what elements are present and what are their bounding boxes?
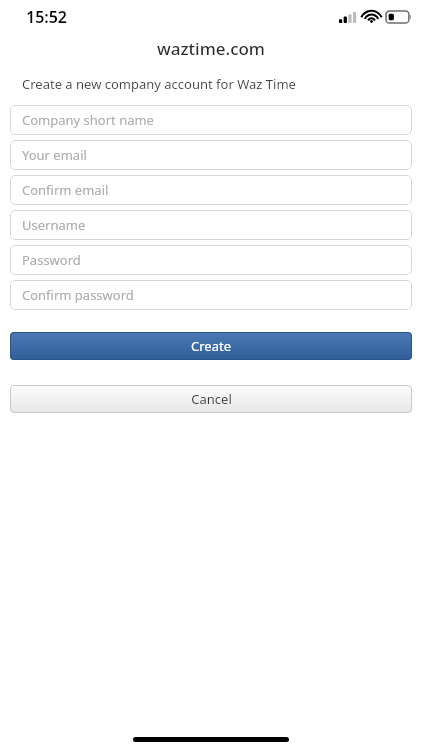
staticText: Create [191, 337, 231, 355]
staticText: Confirm password [22, 286, 134, 304]
staticText: Confirm email [22, 181, 109, 199]
staticText: 15:52 [26, 6, 68, 28]
staticText: Cancel [191, 390, 232, 408]
other: Battery [386, 11, 412, 23]
staticText: Create a new company account for Waz Tim… [22, 75, 296, 93]
staticText: Company short name [22, 111, 154, 129]
staticText: Username [22, 216, 86, 234]
other: Cellular signal [339, 12, 357, 23]
button[interactable]: Create [10, 332, 412, 360]
button[interactable]: Your email [10, 140, 412, 170]
staticText: Password [22, 251, 81, 269]
other: Wi-Fi [363, 11, 380, 23]
button[interactable]: Password [10, 245, 412, 275]
staticText: waztime.com [157, 37, 265, 60]
staticText: Your email [22, 146, 87, 164]
button[interactable]: Cancel [10, 385, 412, 413]
button[interactable]: Username [10, 210, 412, 240]
button[interactable]: Confirm email [10, 175, 412, 205]
button[interactable]: Company short name [10, 105, 412, 135]
button[interactable]: Confirm password [10, 280, 412, 310]
